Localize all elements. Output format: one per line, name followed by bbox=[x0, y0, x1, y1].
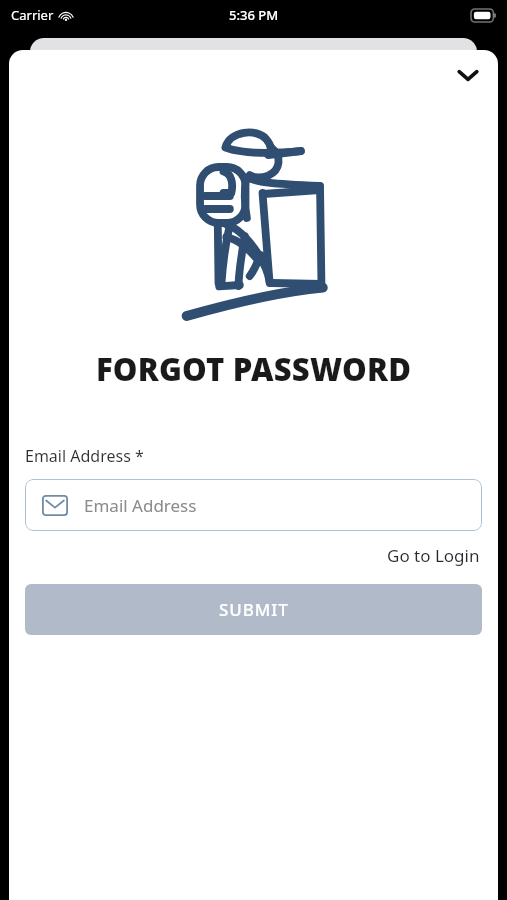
staticText: Carrier bbox=[11, 6, 54, 24]
staticText: Go to Login bbox=[387, 544, 480, 567]
staticText: 5:36 PM bbox=[229, 6, 279, 24]
button[interactable]: SUBMIT bbox=[25, 584, 482, 635]
staticText: Email Address bbox=[84, 494, 197, 517]
button[interactable]: Email Address bbox=[25, 479, 482, 531]
button[interactable]: Go to Login bbox=[385, 541, 482, 570]
staticText: SUBMIT bbox=[219, 598, 289, 621]
staticText: FORGOT PASSWORD bbox=[17, 348, 490, 390]
button[interactable]: Collapse bbox=[446, 53, 490, 97]
staticText: Email Address * bbox=[25, 445, 144, 467]
